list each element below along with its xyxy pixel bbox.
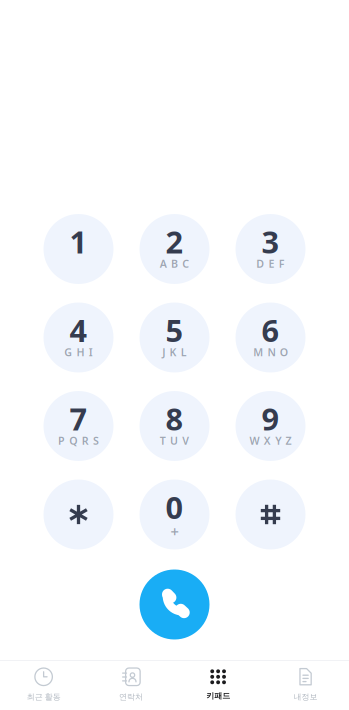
staticText: R	[82, 433, 89, 448]
staticText: X	[264, 433, 271, 448]
staticText: F	[279, 256, 285, 271]
button[interactable]: 키패드	[174, 668, 262, 701]
staticText: Q	[69, 433, 77, 448]
staticText: 2	[165, 221, 183, 262]
staticText: 최근 활동	[27, 692, 61, 702]
button[interactable]: 연락처	[87, 667, 174, 702]
staticText: 4	[69, 310, 87, 350]
button[interactable]: Pound	[235, 479, 305, 549]
staticText: 1	[69, 221, 87, 262]
staticText: N	[267, 345, 275, 359]
button[interactable]: 4	[43, 302, 113, 372]
staticText: W	[250, 433, 260, 448]
staticText: H	[76, 345, 84, 359]
staticText: O	[280, 345, 288, 359]
staticText: D	[256, 256, 264, 271]
button[interactable]: 9	[235, 391, 305, 461]
staticText: 8	[165, 398, 183, 439]
staticText: Y	[275, 433, 281, 448]
button[interactable]: 최근 활동	[0, 667, 87, 702]
staticText: Z	[285, 433, 291, 448]
button[interactable]: 내정보	[262, 667, 349, 702]
button[interactable]: 1	[43, 214, 113, 284]
staticText: 키패드	[206, 691, 230, 701]
staticText: S	[93, 433, 99, 448]
button[interactable]: 3	[235, 214, 305, 284]
staticText: 9	[261, 398, 279, 439]
button[interactable]: 0	[139, 479, 209, 549]
staticText: G	[64, 345, 72, 359]
staticText: U	[170, 433, 178, 448]
staticText: V	[182, 433, 189, 448]
staticText: 연락처	[119, 692, 143, 702]
staticText: 7	[69, 398, 87, 439]
staticText: 0	[165, 487, 183, 527]
staticText: B	[171, 256, 178, 271]
staticText: L	[181, 345, 187, 359]
button[interactable]: Call	[139, 569, 209, 639]
staticText: 3	[261, 221, 279, 262]
button[interactable]: 7	[43, 391, 113, 461]
button[interactable]: 8	[139, 391, 209, 461]
staticText: A	[160, 256, 167, 271]
staticText: J	[162, 345, 165, 359]
staticText: E	[268, 256, 274, 271]
button[interactable]: 5	[139, 302, 209, 372]
staticText: M	[253, 345, 263, 359]
staticText: C	[182, 256, 189, 271]
staticText: 6	[261, 310, 279, 350]
button[interactable]: 6	[235, 302, 305, 372]
staticText: 5	[165, 310, 183, 350]
staticText: K	[169, 345, 176, 359]
staticText: T	[160, 433, 166, 448]
button[interactable]: 2	[139, 214, 209, 284]
staticText: I	[89, 345, 93, 359]
button[interactable]: Star	[43, 479, 113, 549]
staticText: P	[58, 433, 65, 448]
staticText: +	[170, 522, 178, 541]
staticText: 내정보	[293, 692, 317, 702]
